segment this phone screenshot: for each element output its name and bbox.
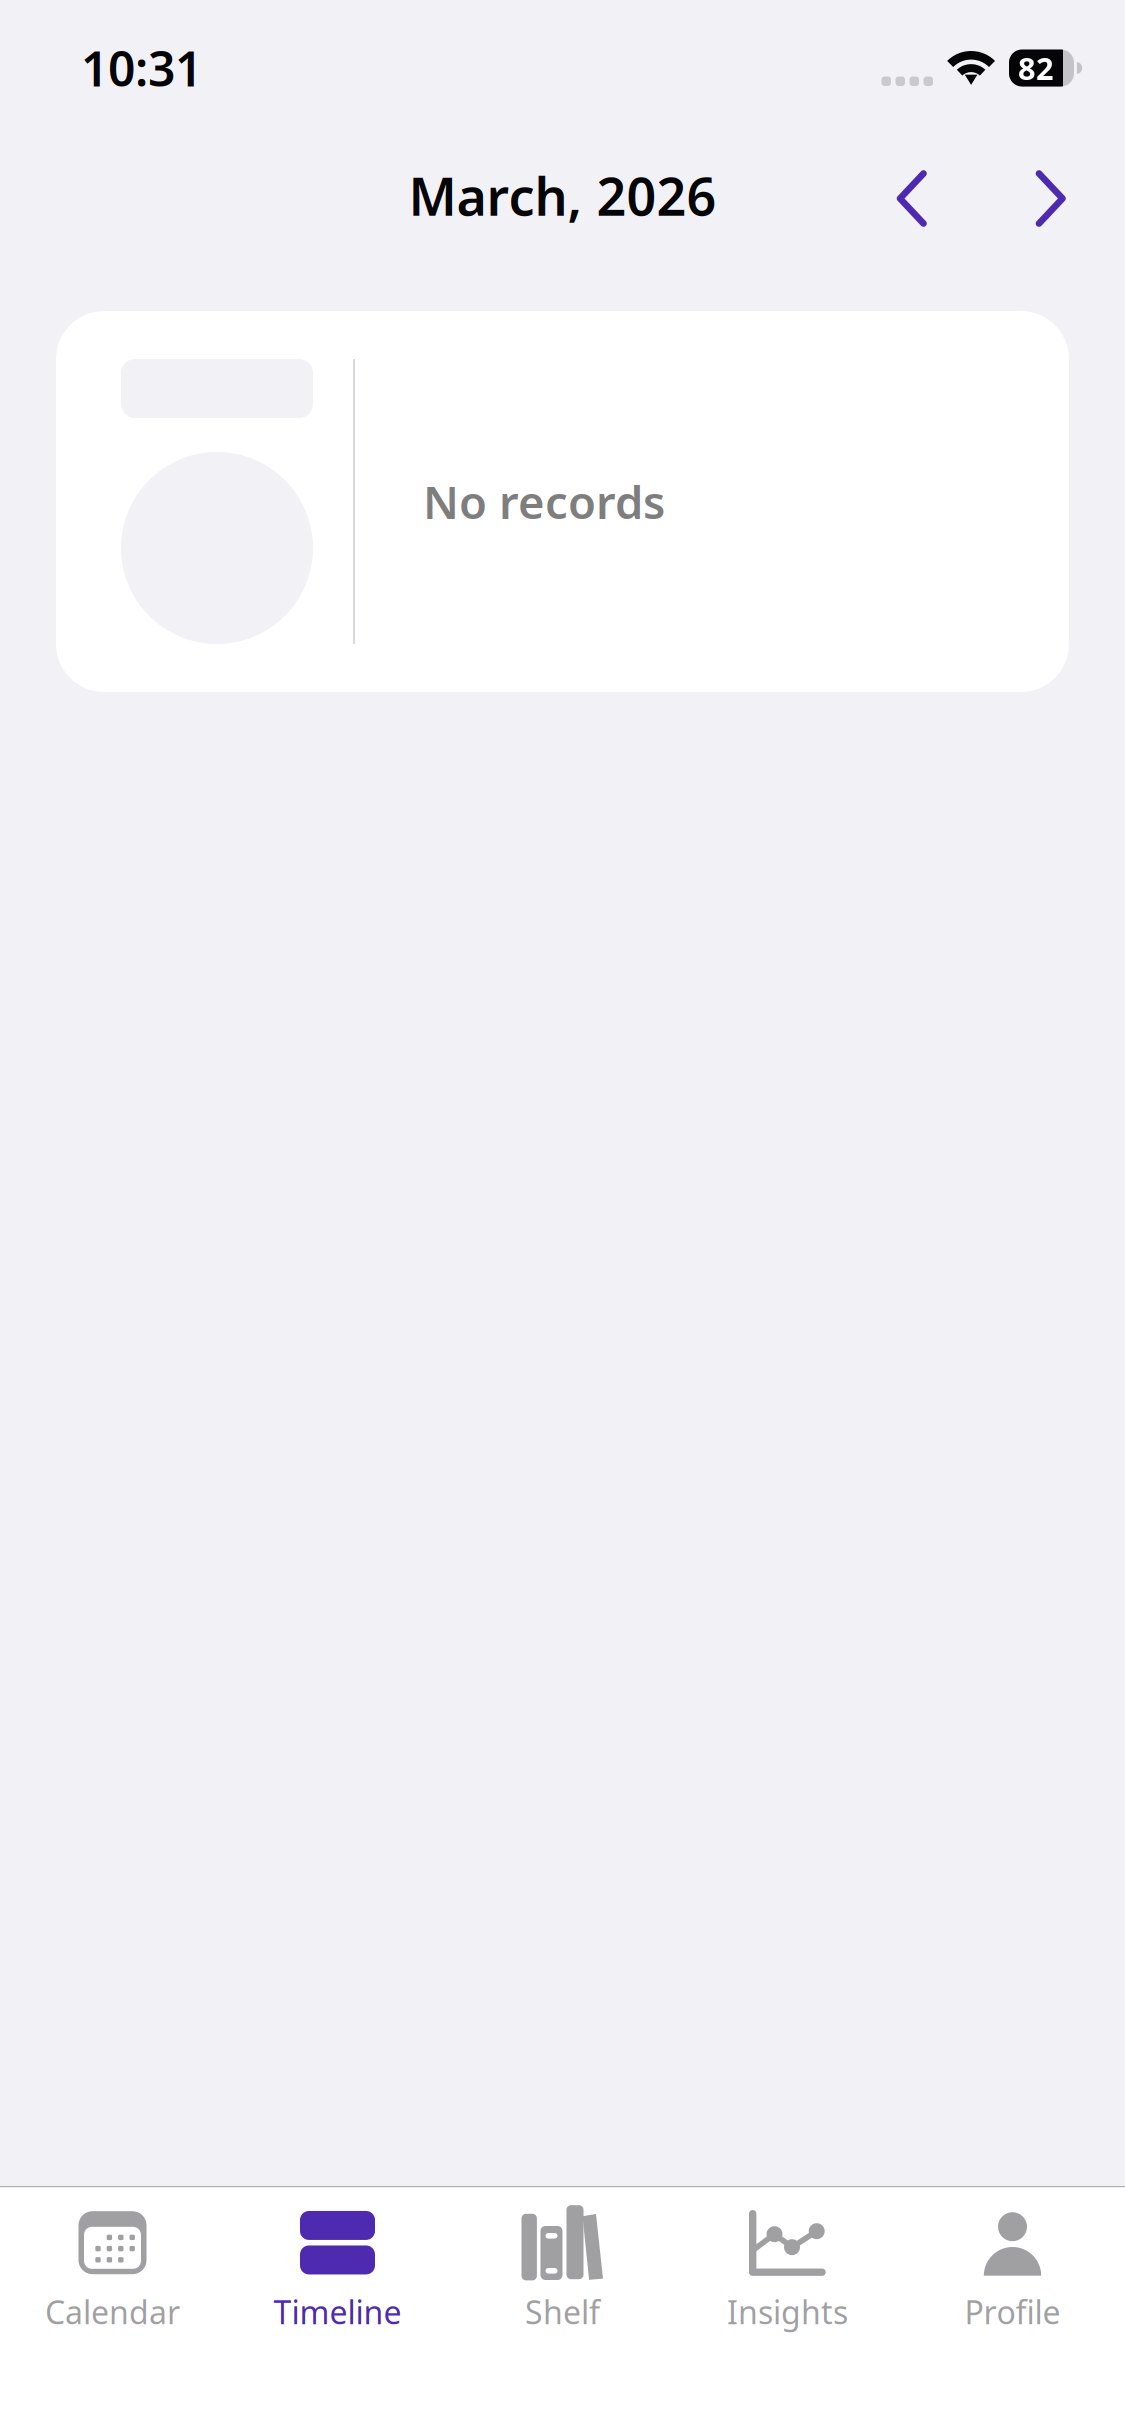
staticText: 82 — [1018, 48, 1054, 88]
staticText: Calendar — [45, 2291, 180, 2333]
button[interactable]: Shelf — [450, 2187, 675, 2353]
button[interactable]: Timeline — [225, 2187, 450, 2353]
staticText: 10:31 — [81, 36, 202, 100]
staticText: Insights — [727, 2291, 848, 2333]
staticText: March, 2026 — [408, 161, 716, 230]
staticText: No records — [423, 471, 665, 532]
button[interactable]: Next month — [982, 142, 1121, 254]
button[interactable]: Calendar — [0, 2187, 225, 2353]
staticText: Timeline — [273, 2291, 401, 2333]
staticText: Profile — [964, 2291, 1060, 2333]
button[interactable]: Insights — [675, 2187, 900, 2353]
button[interactable]: Previous month — [843, 142, 982, 254]
staticText: Shelf — [525, 2291, 600, 2333]
button[interactable]: Profile — [900, 2187, 1125, 2353]
